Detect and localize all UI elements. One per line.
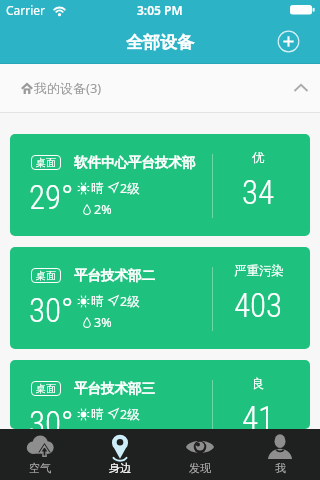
button[interactable]: [274, 27, 303, 56]
staticText: 优: [252, 150, 265, 166]
staticText: 桌面: [36, 156, 56, 169]
staticText: 身边: [109, 461, 131, 475]
button[interactable]: 空气: [0, 429, 80, 480]
staticText: 3:05 PM: [137, 2, 183, 18]
staticText: 3%: [94, 314, 112, 331]
staticText: 2级: [120, 180, 140, 197]
staticText: 403: [234, 286, 283, 325]
staticText: 软件中心平台技术部: [74, 154, 196, 171]
staticText: 30°: [29, 291, 74, 330]
staticText: 空气: [29, 461, 51, 475]
staticText: 桌面: [36, 382, 56, 395]
staticText: 34: [242, 173, 275, 212]
staticText: Carrier: [6, 2, 46, 18]
staticText: 29°: [29, 178, 74, 217]
staticText: 晴: [91, 406, 104, 422]
button[interactable]: 身边: [80, 429, 160, 480]
staticText: 晴: [91, 293, 104, 309]
button[interactable]: 我的设备(3): [0, 64, 320, 113]
staticText: 全部设备: [126, 32, 194, 53]
button[interactable]: 桌面: [10, 360, 310, 429]
staticText: 桌面: [36, 269, 56, 282]
staticText: 我: [275, 461, 286, 475]
button[interactable]: 桌面: [10, 247, 310, 349]
button[interactable]: 发现: [160, 429, 240, 480]
staticText: 41: [242, 399, 275, 429]
staticText: 严重污染: [234, 263, 284, 279]
staticText: 30°: [29, 404, 74, 429]
staticText: 2级: [120, 406, 140, 423]
staticText: 我的设备(3): [34, 79, 102, 97]
button[interactable]: 桌面: [10, 134, 310, 236]
staticText: 平台技术部二: [74, 267, 155, 284]
staticText: 发现: [189, 461, 211, 475]
staticText: 2级: [120, 293, 140, 310]
staticText: 晴: [91, 180, 104, 196]
staticText: 平台技术部三: [74, 380, 155, 397]
button[interactable]: 我: [240, 429, 320, 480]
staticText: 2%: [94, 201, 112, 218]
staticText: 良: [252, 376, 265, 392]
